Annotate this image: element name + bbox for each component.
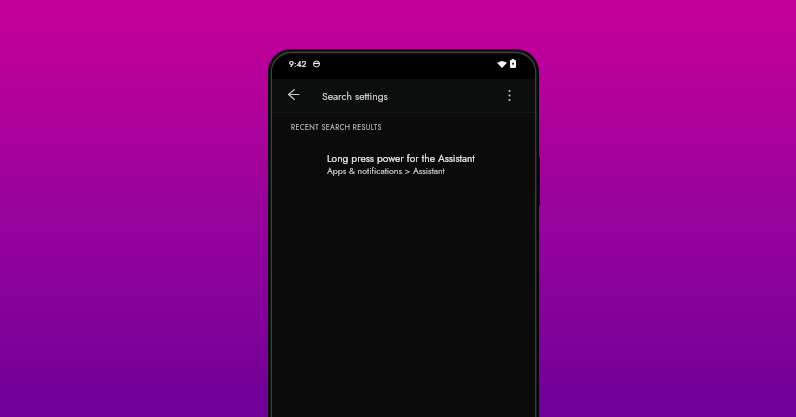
staticText: 9:42 [289, 58, 307, 70]
button[interactable]: Back [278, 79, 308, 109]
button[interactable]: Long press power for the Assistant [272, 147, 535, 185]
button[interactable]: More options [496, 82, 522, 108]
staticText: RECENT SEARCH RESULTS [291, 122, 382, 132]
staticText: Long press power for the Assistant [327, 151, 475, 166]
staticText: Search settings [322, 89, 388, 104]
staticText: Apps & notifications > Assistant [327, 165, 445, 178]
